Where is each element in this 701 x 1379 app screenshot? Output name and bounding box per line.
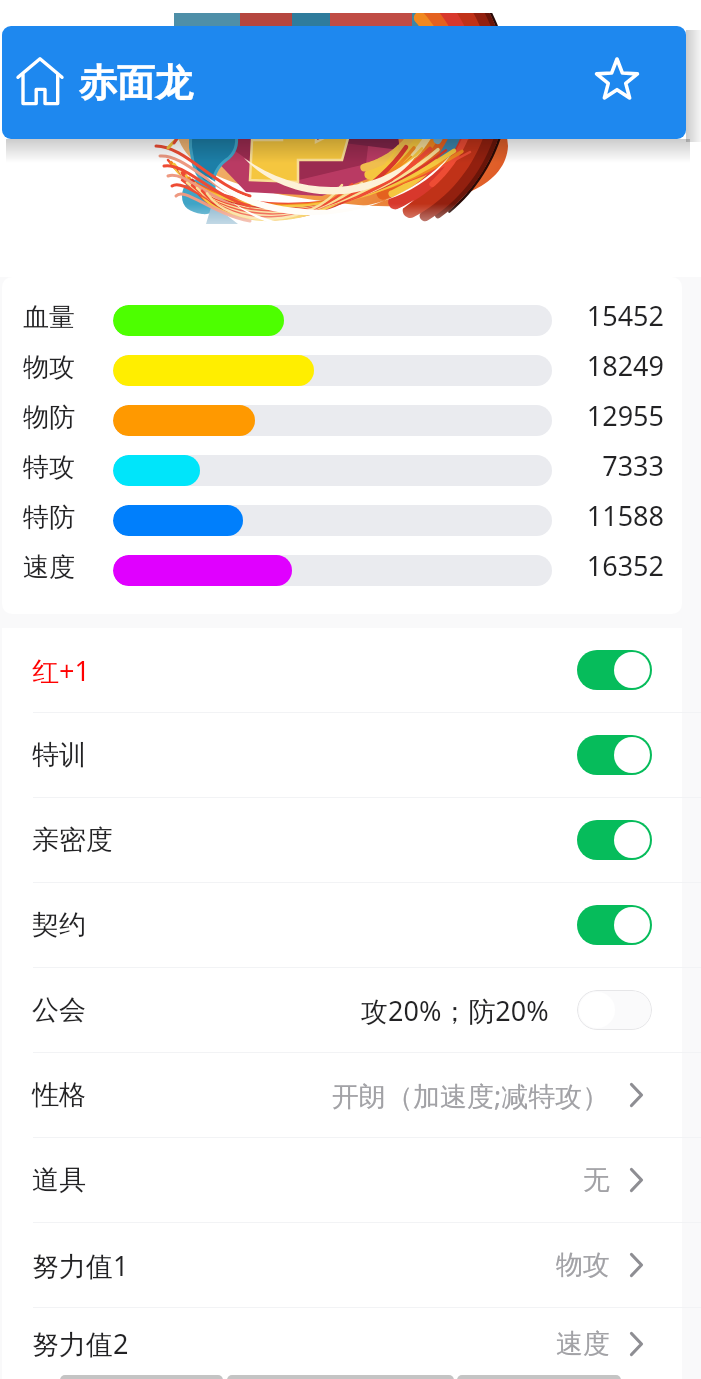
staticText: 亲密度 — [32, 823, 113, 857]
button[interactable]: Action one — [60, 1375, 223, 1379]
staticText: 契约 — [32, 908, 86, 942]
button[interactable]: 契约 — [2, 883, 682, 967]
staticText: 速度 — [556, 1327, 610, 1361]
button[interactable]: Toggle — [577, 905, 652, 945]
staticText: 11588 — [482, 497, 664, 534]
staticText: 物防 — [23, 401, 75, 434]
button[interactable]: Action three — [457, 1375, 621, 1379]
staticText: 物攻 — [556, 1248, 610, 1282]
staticText: 15452 — [482, 297, 664, 334]
staticText: 16352 — [482, 547, 664, 584]
staticText: 道具 — [32, 1163, 86, 1197]
button[interactable]: 性格 — [2, 1053, 682, 1137]
staticText: 赤面龙 — [79, 59, 193, 107]
staticText: 18249 — [482, 347, 664, 384]
staticText: 开朗（加速度;减特攻） — [332, 1077, 610, 1114]
staticText: 红+1 — [32, 652, 90, 689]
staticText: 物攻 — [23, 351, 75, 384]
staticText: 血量 — [23, 301, 75, 334]
button[interactable]: Home — [14, 52, 70, 112]
button[interactable]: Toggle — [577, 990, 652, 1030]
staticText: 特攻 — [23, 451, 75, 484]
button[interactable]: 努力值2 — [2, 1308, 682, 1379]
staticText: 努力值2 — [32, 1325, 129, 1362]
staticText: 公会 — [32, 993, 86, 1027]
button[interactable]: Favorite — [588, 54, 646, 112]
button[interactable]: Action two — [227, 1375, 454, 1379]
staticText: 7333 — [482, 447, 664, 484]
staticText: 攻20%；防20% — [361, 992, 549, 1029]
staticText: 无 — [583, 1163, 610, 1197]
staticText: 努力值1 — [32, 1247, 129, 1284]
staticText: 12955 — [482, 397, 664, 434]
staticText: 特防 — [23, 501, 75, 534]
staticText: 速度 — [23, 551, 75, 584]
staticText: 性格 — [32, 1078, 86, 1112]
button[interactable]: 公会 — [2, 968, 682, 1052]
button[interactable]: 努力值1 — [2, 1223, 682, 1307]
button[interactable]: 特训 — [2, 713, 682, 797]
button[interactable]: 亲密度 — [2, 798, 682, 882]
button[interactable]: Toggle — [577, 735, 652, 775]
button[interactable]: 道具 — [2, 1138, 682, 1222]
button[interactable]: 红+1 — [2, 628, 682, 712]
button[interactable]: Toggle — [577, 820, 652, 860]
staticText: 特训 — [32, 738, 86, 772]
button[interactable]: Toggle — [577, 650, 652, 690]
